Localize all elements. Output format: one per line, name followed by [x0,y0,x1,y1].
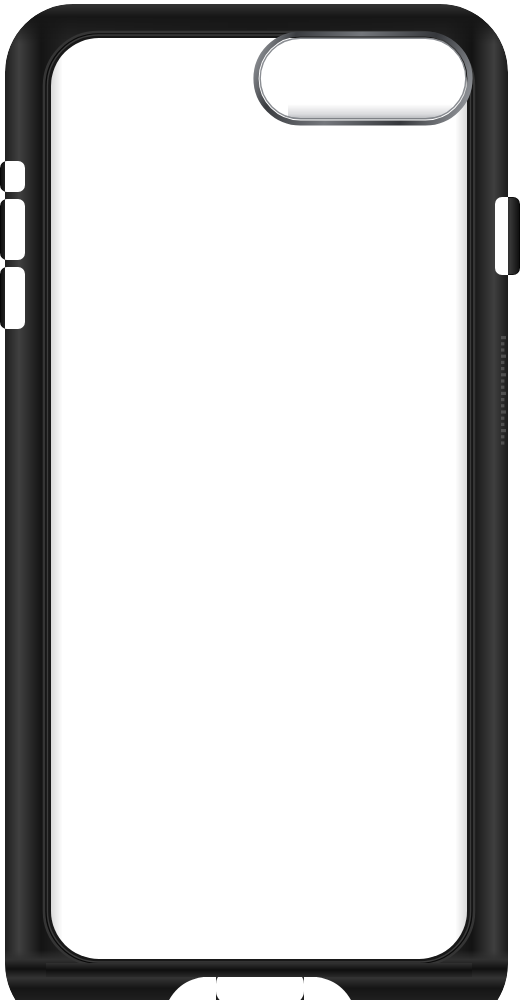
other: Black protective phone case, back view [0,0,520,1000]
